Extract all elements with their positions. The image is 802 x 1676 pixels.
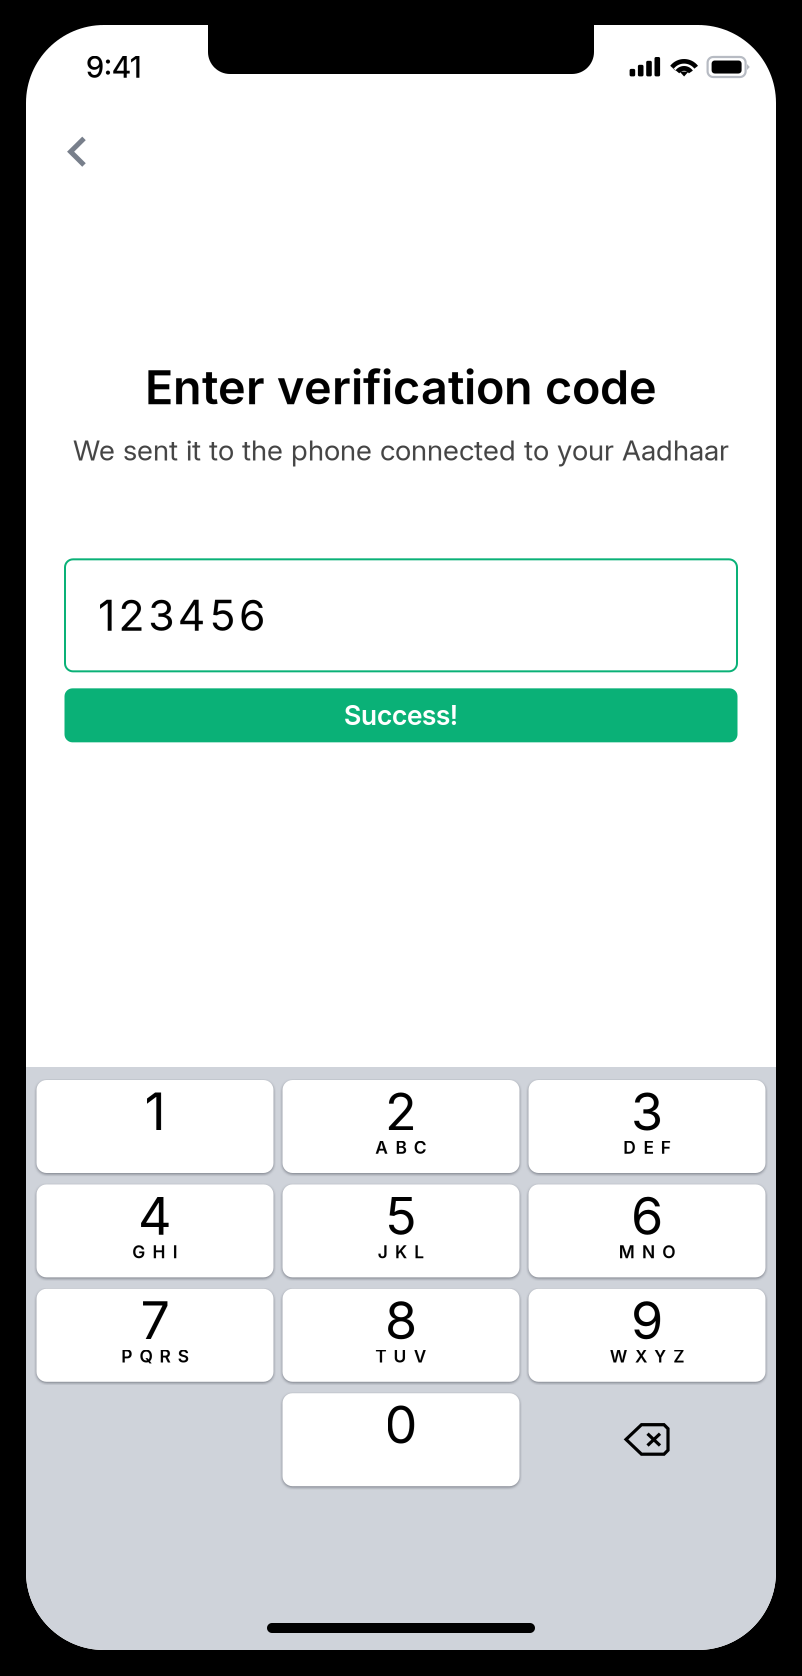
staticText: 123456 [98,589,265,641]
button[interactable]: 2 [282,1080,519,1173]
button[interactable]: 6 [528,1184,765,1277]
staticText: 9 [631,1289,663,1352]
staticText: Success! [344,699,458,731]
staticText: T U V [375,1346,427,1367]
staticText: P Q R S [121,1346,189,1367]
button[interactable]: Success! [64,688,737,742]
staticText: 0 [384,1393,417,1456]
staticText: J K L [378,1241,424,1262]
button[interactable]: 0 [282,1393,519,1486]
button[interactable]: 8 [282,1289,519,1382]
button[interactable]: 4 [36,1184,273,1277]
button[interactable]: 7 [36,1289,273,1382]
staticText: Enter verification code [145,359,657,415]
staticText: We sent it to the phone connected to you… [73,433,729,467]
staticText: G H I [132,1241,178,1262]
staticText: 1 [144,1080,165,1143]
button[interactable]: Delete [528,1393,765,1486]
staticText: D E F [623,1137,671,1158]
staticText: M N O [619,1241,675,1262]
staticText: 4 [138,1184,172,1247]
staticText: 6 [631,1184,663,1247]
button[interactable]: 3 [528,1080,765,1173]
button[interactable]: 5 [282,1184,519,1277]
staticText: 9:41 [86,49,142,85]
staticText: 2 [385,1080,417,1143]
button[interactable]: 9 [528,1289,765,1382]
button[interactable]: 1 [36,1080,273,1173]
button[interactable]: Back [44,118,110,184]
staticText: 3 [631,1080,663,1143]
staticText: 5 [385,1184,417,1247]
staticText: W X Y Z [610,1346,684,1367]
staticText: 7 [140,1289,169,1352]
staticText: 8 [385,1289,417,1352]
staticText: A B C [375,1137,427,1158]
